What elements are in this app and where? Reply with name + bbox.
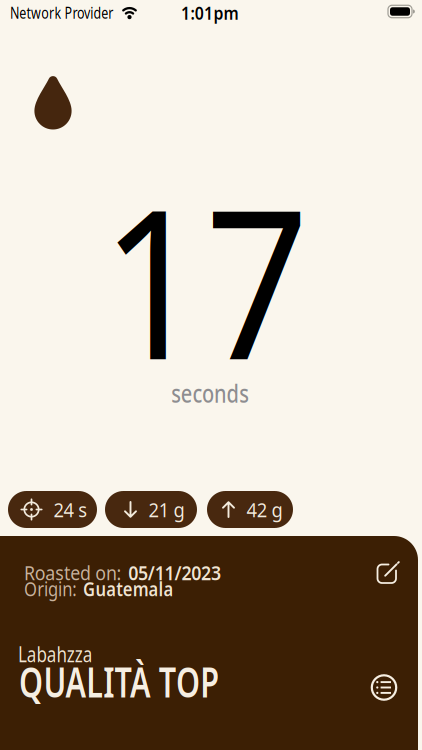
- staticText: 21 g: [147, 496, 186, 523]
- staticText: 1:01pm: [176, 0, 244, 25]
- button[interactable]: Edit bean details: [375, 559, 401, 585]
- button[interactable]: 21 g: [105, 491, 197, 528]
- button[interactable]: Beans list: [370, 673, 398, 701]
- staticText: seconds: [161, 376, 259, 410]
- button[interactable]: 24 s: [8, 491, 97, 528]
- staticText: 05/11/2023: [141, 559, 245, 586]
- staticText: 17: [87, 142, 323, 416]
- staticText: 42 g: [245, 496, 284, 523]
- staticText: QUALITÀ TOP: [19, 654, 289, 709]
- staticText: Labahzza: [18, 640, 111, 668]
- staticText: Network Provider: [10, 2, 143, 23]
- staticText: 24 s: [52, 496, 89, 523]
- staticText: Origin:: [24, 575, 87, 602]
- staticText: Roasted on:: [24, 559, 133, 586]
- button[interactable]: 42 g: [207, 491, 293, 528]
- staticText: Guatemala: [95, 575, 204, 602]
